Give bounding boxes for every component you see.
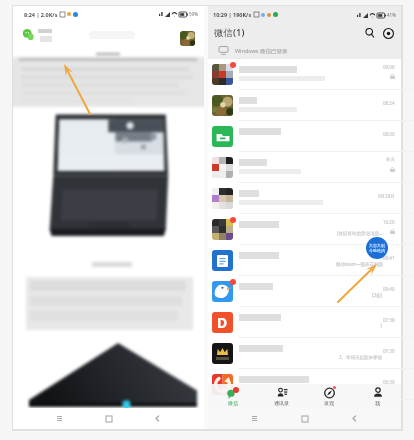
staticText: 1 bbox=[380, 323, 383, 329]
button[interactable]: Windows 微信已登录 bbox=[208, 42, 401, 59]
button[interactable]: [有好友给您发送消息… bbox=[208, 214, 401, 245]
staticText: 8:24 | 2.0K/s bbox=[24, 11, 58, 18]
staticText: 10:29 | 190K/s bbox=[213, 11, 252, 18]
staticText: [3条] bbox=[372, 292, 383, 298]
button[interactable]: 发现 bbox=[305, 384, 353, 408]
staticText: 2、幸福天起款来事情 bbox=[339, 354, 383, 360]
staticText: 大吉大利 bbox=[369, 243, 385, 248]
staticText: 微信 bbox=[228, 400, 238, 406]
staticText: 发现 bbox=[324, 400, 334, 406]
staticText: 微信(1) bbox=[214, 26, 245, 39]
button[interactable]: 08:24 bbox=[208, 90, 401, 121]
staticText: 昨天 bbox=[386, 157, 395, 163]
button[interactable]: 2、幸福天起款来事情 bbox=[208, 338, 401, 369]
button[interactable]: 09:06 bbox=[208, 59, 401, 90]
button[interactable]: 通讯录 bbox=[257, 384, 305, 408]
button[interactable]: D bbox=[208, 307, 401, 338]
staticText: 今晚吃鸡 bbox=[369, 248, 385, 253]
staticText: 08:00 bbox=[383, 131, 395, 137]
staticText: D bbox=[217, 313, 228, 332]
staticText: 09:41 bbox=[383, 255, 395, 261]
staticText: 07:30 bbox=[383, 348, 395, 354]
button[interactable]: Advertisement bbox=[366, 237, 388, 259]
button[interactable]: 9月28日 bbox=[208, 183, 401, 214]
button[interactable]: 我 bbox=[353, 384, 401, 408]
staticText: 我 bbox=[375, 400, 380, 406]
button[interactable]: Search bbox=[361, 24, 379, 42]
staticText: 9月28日 bbox=[378, 193, 395, 199]
button[interactable]: [3条] bbox=[208, 276, 401, 307]
staticText: 微信teamー报表已列新 bbox=[336, 261, 383, 267]
staticText: [有好友给您发送消息… bbox=[337, 230, 383, 236]
button[interactable]: 微信 bbox=[208, 384, 257, 408]
staticText: 09:40 bbox=[383, 286, 395, 292]
button[interactable]: 06:39 bbox=[208, 369, 401, 400]
button[interactable]: 08:00 bbox=[208, 121, 401, 152]
button[interactable]: 昨天 bbox=[208, 152, 401, 183]
staticText: Windows 微信已登录 bbox=[235, 47, 288, 55]
staticText: 09:06 bbox=[383, 64, 395, 70]
staticText: 08:24 bbox=[383, 100, 395, 106]
staticText: 通讯录 bbox=[274, 400, 289, 406]
staticText: 06:39 bbox=[383, 379, 395, 385]
button[interactable]: Add bbox=[379, 24, 397, 42]
staticText: 07:38 bbox=[383, 317, 395, 323]
staticText: 41% bbox=[387, 12, 396, 18]
staticText: 10:26 bbox=[383, 219, 395, 225]
staticText: 59% bbox=[189, 11, 198, 17]
button[interactable]: 微信teamー报表已列新 bbox=[208, 245, 401, 276]
